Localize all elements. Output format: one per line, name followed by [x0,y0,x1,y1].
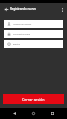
staticText: Cerrar sesión [22,97,45,102]
staticText: Contraseña nueva [13,33,31,36]
button[interactable]: Back [10,109,19,118]
staticText: España [13,43,20,46]
button[interactable]: Nombre de usuario [4,20,63,28]
button[interactable]: Home [29,109,38,118]
button[interactable]: Cerrar sesión [3,94,64,104]
button[interactable]: More options [59,6,66,13]
staticText: Registrando nuevo [10,7,37,11]
button[interactable]: España [4,40,63,48]
button[interactable]: Back [2,5,10,13]
staticText: Nombre de usuario [13,23,32,26]
button[interactable]: Recents [48,109,57,118]
button[interactable]: Contraseña nueva [4,30,63,38]
